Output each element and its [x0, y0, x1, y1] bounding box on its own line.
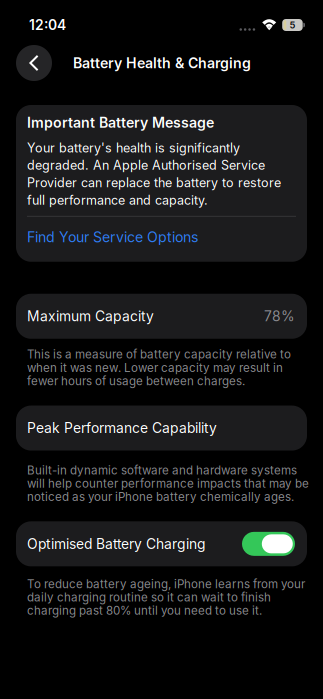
staticText: 78% [264, 308, 295, 325]
button[interactable]: Maximum Capacity [16, 294, 307, 339]
button[interactable]: Optimised Battery Charging [242, 532, 295, 556]
staticText: Built-in dynamic software and hardware s… [27, 464, 309, 503]
staticText: Important Battery Message [27, 114, 214, 131]
staticText: Find Your Service Options [27, 229, 198, 246]
staticText: Peak Performance Capability [27, 420, 217, 436]
staticText: Optimised Battery Charging [27, 535, 206, 552]
button[interactable]: Peak Performance Capability [16, 406, 307, 451]
staticText: 5 [289, 19, 295, 31]
staticText: Battery Health & Charging [73, 54, 251, 71]
button[interactable]: Back [16, 45, 52, 81]
staticText: Your battery's health is significantly d… [27, 139, 281, 209]
button[interactable]: Find Your Service Options [27, 229, 296, 246]
staticText: This is a measure of battery capacity re… [27, 348, 291, 388]
staticText: To reduce battery ageing, iPhone learns … [27, 577, 305, 617]
staticText: Maximum Capacity [27, 308, 154, 325]
staticText: 12:04 [29, 17, 66, 33]
